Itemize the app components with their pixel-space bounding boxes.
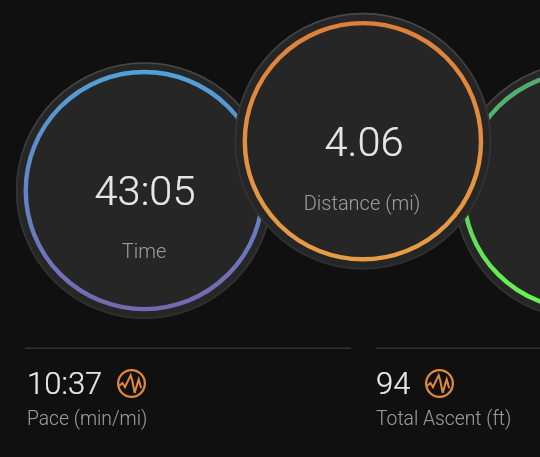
staticText: 43:05 bbox=[15, 166, 275, 215]
other: View Pace (min/mi) chart bbox=[117, 369, 146, 398]
staticText: 94 bbox=[376, 365, 411, 401]
staticText: 4.06 bbox=[234, 117, 494, 166]
other: View Total Ascent (ft) chart bbox=[425, 369, 454, 398]
staticText: Total Ascent (ft) bbox=[376, 407, 512, 430]
button[interactable]: Time 43:05 bbox=[16, 63, 270, 317]
button[interactable]: 94 bbox=[376, 365, 512, 430]
button[interactable]: Distance 4.06 mi bbox=[235, 13, 489, 267]
staticText: Pace (min/mi) bbox=[27, 407, 148, 430]
staticText: Time bbox=[14, 239, 274, 262]
staticText: Distance (mi) bbox=[232, 191, 492, 214]
button[interactable]: 10:37 bbox=[27, 365, 148, 430]
staticText: 10:37 bbox=[27, 365, 103, 401]
